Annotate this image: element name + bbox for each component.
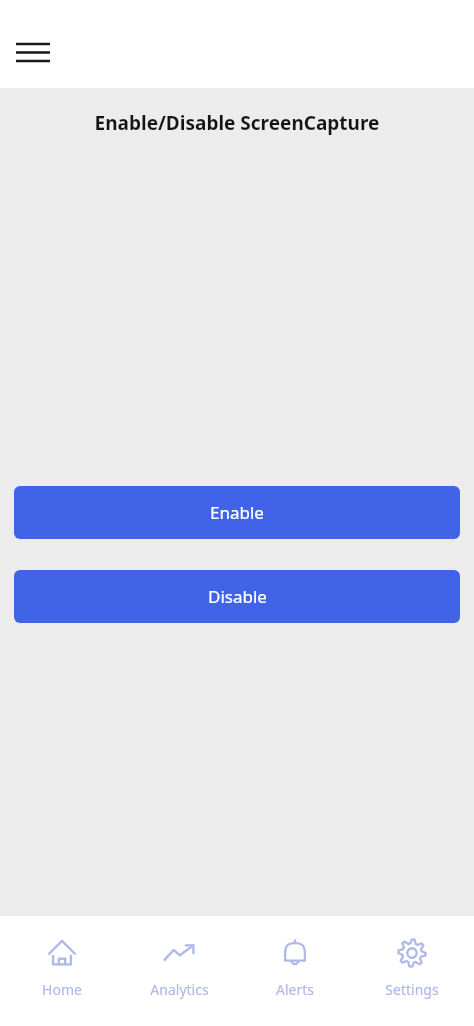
staticText: Enable/Disable ScreenCapture <box>0 110 474 136</box>
button[interactable]: Alerts <box>240 916 350 999</box>
staticText: Settings <box>385 980 439 999</box>
button[interactable]: Enable <box>14 486 460 539</box>
staticText: Home <box>42 980 82 999</box>
button[interactable]: Analytics <box>124 916 234 999</box>
staticText: Alerts <box>276 980 314 999</box>
staticText: Analytics <box>150 980 209 999</box>
staticText: Enable <box>210 501 264 524</box>
button[interactable]: Settings <box>357 916 467 999</box>
button[interactable]: Home <box>7 916 117 999</box>
staticText: Disable <box>208 585 267 608</box>
button[interactable]: Open navigation menu <box>9 28 57 76</box>
button[interactable]: Disable <box>14 570 460 623</box>
